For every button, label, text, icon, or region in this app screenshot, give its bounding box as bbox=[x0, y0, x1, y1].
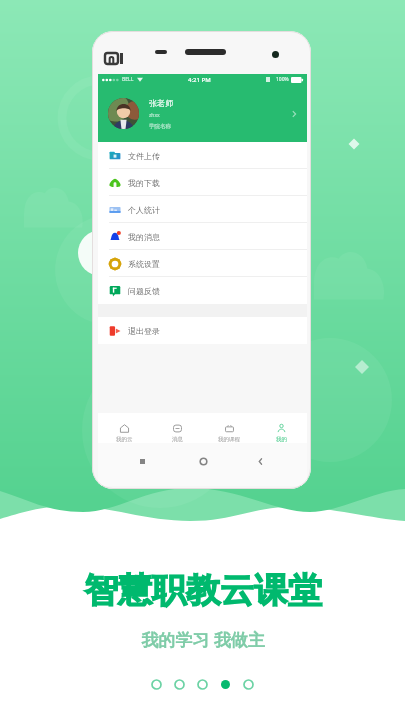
button[interactable]: Page 2 bbox=[175, 680, 184, 689]
button[interactable]: 文件上传 bbox=[98, 142, 307, 169]
staticText: 学院名称 bbox=[149, 123, 171, 130]
button[interactable]: 我的下载 bbox=[98, 169, 307, 196]
button[interactable]: 我的课程 bbox=[203, 413, 255, 443]
button[interactable]: 个人统计 bbox=[98, 196, 307, 223]
staticText: 消息 bbox=[172, 436, 183, 443]
staticText: 我的 bbox=[276, 436, 287, 443]
button[interactable]: 消息 bbox=[151, 413, 203, 443]
staticText: 退出登录 bbox=[128, 326, 160, 336]
button[interactable]: 我的消息 bbox=[98, 223, 307, 250]
staticText: 系统设置 bbox=[128, 259, 160, 269]
staticText: 4:21 PM bbox=[188, 76, 211, 84]
staticText: 个人统计 bbox=[128, 205, 160, 215]
button[interactable]: 我的 bbox=[255, 413, 307, 443]
button[interactable]: 我的云 bbox=[98, 413, 151, 443]
staticText: BELL bbox=[122, 76, 134, 83]
staticText: 100% bbox=[276, 76, 289, 83]
button[interactable]: Page 3 bbox=[198, 680, 207, 689]
button[interactable]: 退出登录 bbox=[98, 317, 307, 344]
button[interactable]: 张老师 bbox=[98, 85, 307, 142]
button[interactable]: 系统设置 bbox=[98, 250, 307, 277]
staticText: 我的学习 我做主 bbox=[141, 628, 265, 651]
staticText: 问题反馈 bbox=[128, 286, 160, 296]
staticText: zhxx bbox=[149, 112, 160, 119]
staticText: 我的云 bbox=[116, 436, 133, 443]
button[interactable]: Page 4 bbox=[221, 680, 230, 689]
staticText: 我的下载 bbox=[128, 178, 160, 188]
staticText: 张老师 bbox=[149, 98, 173, 108]
button[interactable]: Page 5 bbox=[244, 680, 253, 689]
button[interactable]: 问题反馈 bbox=[98, 277, 307, 304]
staticText: 我的消息 bbox=[128, 232, 160, 242]
staticText: 智慧职教云课堂 bbox=[84, 569, 322, 612]
staticText: 文件上传 bbox=[128, 151, 160, 161]
button[interactable]: Page 1 bbox=[152, 680, 161, 689]
staticText: 我的课程 bbox=[218, 436, 240, 443]
